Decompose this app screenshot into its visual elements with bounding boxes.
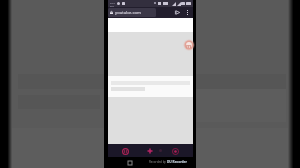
button[interactable]: youtube.com: [108, 8, 156, 17]
staticText: youtube.com: [115, 10, 141, 16]
button[interactable]: More options: [183, 8, 192, 17]
staticText: Recorded by: [149, 160, 167, 164]
staticText: DU Recorder: [167, 160, 187, 164]
staticText: PM: [110, 4, 114, 7]
button[interactable]: Stop recording: [170, 146, 180, 156]
staticText: 3:47: [110, 1, 115, 4]
button[interactable]: Pause: [120, 146, 130, 156]
staticText: m: [186, 42, 192, 49]
button[interactable]: Recent apps: [127, 160, 133, 166]
button[interactable]: Draw: [145, 146, 155, 156]
button[interactable]: Cast: [173, 8, 182, 17]
